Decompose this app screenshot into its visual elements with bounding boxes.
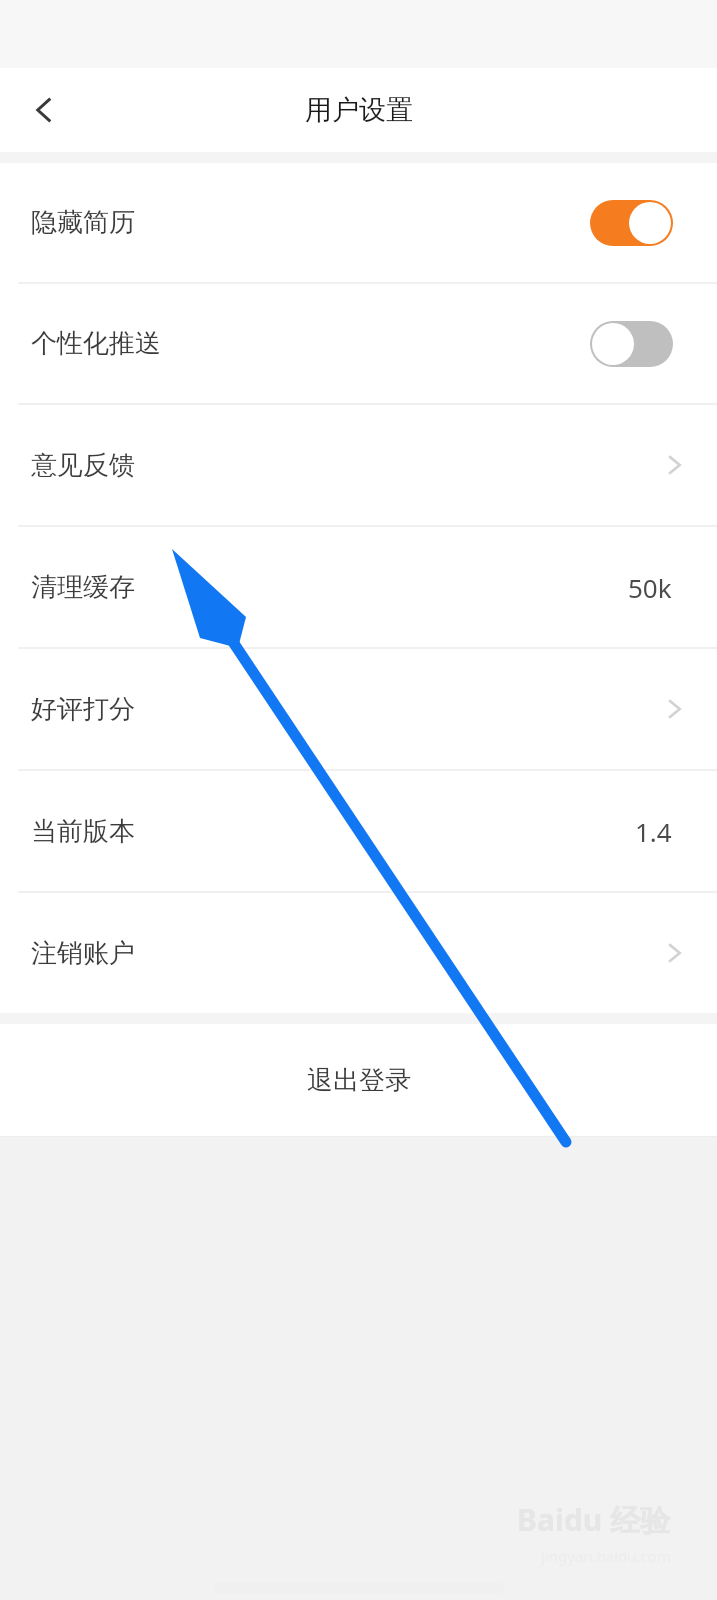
button[interactable]: On bbox=[590, 200, 673, 246]
button[interactable]: 意见反馈 bbox=[0, 405, 717, 525]
staticText: 50k bbox=[628, 570, 672, 605]
button[interactable]: 隐藏简历 bbox=[0, 163, 717, 282]
button[interactable]: 当前版本 bbox=[0, 771, 717, 891]
staticText: 意见反馈 bbox=[31, 449, 135, 482]
staticText: 用户设置 bbox=[305, 93, 413, 127]
staticText: Baidu 经验 bbox=[517, 1499, 671, 1540]
staticText: 个性化推送 bbox=[31, 327, 161, 360]
button[interactable]: Back bbox=[8, 74, 80, 146]
staticText: 好评打分 bbox=[31, 693, 135, 726]
button[interactable]: 退出登录 bbox=[0, 1024, 717, 1136]
staticText: 当前版本 bbox=[31, 815, 135, 848]
button[interactable]: 个性化推送 bbox=[0, 284, 717, 403]
staticText: 1.4 bbox=[635, 814, 672, 849]
button[interactable]: 清理缓存 bbox=[0, 527, 717, 647]
staticText: 注销账户 bbox=[31, 937, 135, 970]
button[interactable]: 好评打分 bbox=[0, 649, 717, 769]
staticText: 退出登录 bbox=[307, 1064, 411, 1097]
staticText: 清理缓存 bbox=[31, 571, 135, 604]
staticText: 隐藏简历 bbox=[31, 206, 135, 239]
button[interactable]: 注销账户 bbox=[0, 893, 717, 1013]
button[interactable]: Off bbox=[590, 321, 673, 367]
